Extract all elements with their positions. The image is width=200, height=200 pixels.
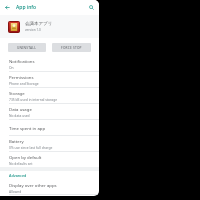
staticText: Storage	[9, 90, 25, 96]
button[interactable]: Notifications	[0, 56, 99, 71]
staticText: Data usage	[9, 106, 32, 112]
button[interactable]: Storage	[0, 88, 99, 103]
staticText: Time spent in app	[9, 125, 46, 131]
button[interactable]: Display over other apps	[0, 180, 99, 194]
staticText: Battery	[9, 138, 24, 144]
button[interactable]: Time spent in app	[0, 120, 99, 135]
staticText: No data used	[9, 113, 30, 117]
staticText: version 1.0	[25, 28, 41, 32]
button[interactable]: Open by default	[0, 152, 99, 167]
staticText: No defaults set	[9, 161, 33, 165]
staticText: UNINSTALL	[17, 46, 37, 50]
staticText: 735 kB used in internal storage	[9, 97, 58, 101]
staticText: Allowed	[9, 189, 22, 193]
button[interactable]: UNINSTALL	[8, 43, 46, 52]
button[interactable]: Data usage	[0, 104, 99, 119]
staticText: Permissions	[9, 74, 34, 80]
button[interactable]: Back	[3, 3, 12, 12]
staticText: Notifications	[9, 58, 35, 64]
staticText: 会議本アプリ	[25, 21, 53, 27]
staticText: FORCE STOP	[61, 46, 82, 50]
button[interactable]: Search	[87, 3, 96, 12]
staticText: Open by default	[9, 154, 42, 160]
staticText: On	[9, 65, 14, 69]
button[interactable]: Battery	[0, 136, 99, 151]
staticText: Phone and Storage	[9, 81, 39, 85]
button[interactable]: Modify system settings	[0, 195, 99, 196]
staticText: 0% use since last full charge	[9, 145, 53, 149]
button[interactable]: FORCE STOP	[52, 43, 91, 52]
staticText: App info	[16, 4, 37, 11]
staticText: Advanced	[9, 173, 27, 178]
staticText: Display over other apps	[9, 182, 57, 188]
button[interactable]: 会議本アプリ	[0, 15, 99, 38]
button[interactable]: Permissions	[0, 72, 99, 87]
